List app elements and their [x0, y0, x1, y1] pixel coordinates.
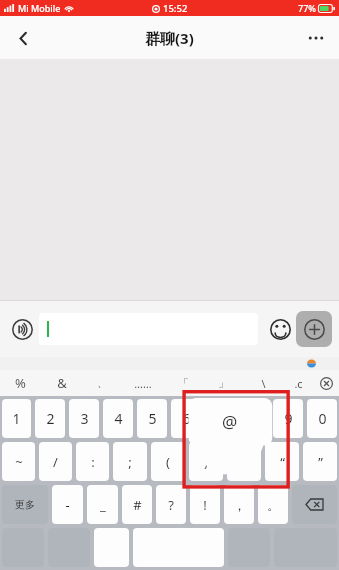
staticText: 15:52 — [163, 2, 188, 15]
staticText: ， — [233, 497, 246, 513]
button[interactable]: 2 — [35, 399, 65, 438]
staticText: ~ — [15, 453, 23, 471]
button[interactable]: 」 — [203, 370, 243, 396]
staticText: 7 — [216, 409, 225, 428]
staticText: 9 — [284, 409, 293, 428]
button[interactable]: # — [122, 485, 152, 524]
button[interactable]: ， — [224, 485, 254, 524]
staticText: 5 — [148, 409, 157, 428]
button[interactable]: 、 — [82, 370, 123, 396]
staticText: @ — [222, 410, 238, 433]
button[interactable]: 5 — [137, 399, 167, 438]
button[interactable]: ) — [189, 442, 223, 481]
button[interactable]: \ — [243, 370, 283, 396]
button[interactable]: Back — [6, 21, 40, 55]
button[interactable]: More functions — [296, 311, 332, 347]
button[interactable]: Close suggestions — [313, 370, 339, 396]
staticText: ” — [318, 453, 323, 471]
button[interactable]: 3 — [69, 399, 99, 438]
staticText: 」 — [218, 376, 229, 390]
staticText: / — [53, 453, 58, 471]
button[interactable]: 7 — [205, 399, 235, 438]
staticText: 1 — [12, 409, 21, 428]
staticText: ; — [128, 453, 132, 471]
button[interactable]: & — [41, 370, 82, 396]
button[interactable]: 更多 — [2, 485, 48, 524]
staticText: ) — [204, 453, 208, 471]
staticText: 77% — [298, 2, 316, 14]
staticText: 群聊(3) — [145, 28, 194, 48]
staticText: 2 — [46, 409, 55, 428]
button[interactable]: …… — [123, 370, 163, 396]
button[interactable]: ” — [303, 442, 337, 481]
staticText: ! — [203, 496, 207, 514]
staticText: \ — [261, 376, 266, 391]
staticText: “ — [280, 453, 285, 471]
staticText: _ — [100, 496, 106, 514]
staticText: & — [57, 374, 67, 392]
button[interactable] — [133, 528, 224, 567]
button[interactable]: Emoji — [264, 313, 296, 345]
staticText: : — [91, 453, 95, 471]
button[interactable]: Voice input — [7, 314, 37, 344]
button[interactable]: More options — [299, 21, 333, 55]
button[interactable]: 「 — [163, 370, 203, 396]
button[interactable]: % — [0, 370, 41, 396]
staticText: 6 — [182, 409, 191, 428]
button[interactable]: ! — [190, 485, 220, 524]
staticText: 更多 — [15, 498, 35, 511]
button[interactable]: 1 — [2, 399, 31, 438]
button[interactable]: ; — [113, 442, 147, 481]
button[interactable]: 9 — [273, 399, 303, 438]
button[interactable] — [39, 313, 258, 345]
button[interactable]: 0 — [307, 399, 337, 438]
button[interactable]: 。 — [258, 485, 288, 524]
staticText: 4 — [114, 409, 123, 428]
staticText: 「 — [178, 376, 189, 390]
button[interactable]: ~ — [2, 442, 35, 481]
staticText: .c — [294, 376, 303, 391]
button[interactable]: Backspace — [292, 485, 337, 524]
button[interactable]: / — [39, 442, 72, 481]
button[interactable]: ( — [151, 442, 185, 481]
staticText: % — [15, 374, 26, 392]
staticText: 0 — [318, 409, 327, 428]
button[interactable]: _ — [87, 485, 118, 524]
button[interactable]: 6 — [171, 399, 201, 438]
button[interactable]: .c — [283, 370, 313, 396]
staticText: - — [65, 496, 70, 514]
staticText: …… — [134, 376, 152, 391]
button[interactable]: ? — [156, 485, 186, 524]
button[interactable] — [94, 528, 129, 567]
staticText: 3 — [80, 409, 89, 428]
staticText: 、 — [97, 376, 108, 390]
button[interactable]: “ — [265, 442, 299, 481]
staticText: ( — [166, 453, 170, 471]
staticText: Mi Mobile — [18, 2, 61, 14]
button[interactable]: - — [52, 485, 83, 524]
staticText: 。 — [267, 497, 280, 513]
button[interactable]: 4 — [103, 399, 133, 438]
staticText: # — [133, 496, 142, 514]
staticText: ? — [168, 496, 174, 514]
button[interactable]: 〔 — [227, 442, 261, 481]
button[interactable]: : — [76, 442, 109, 481]
